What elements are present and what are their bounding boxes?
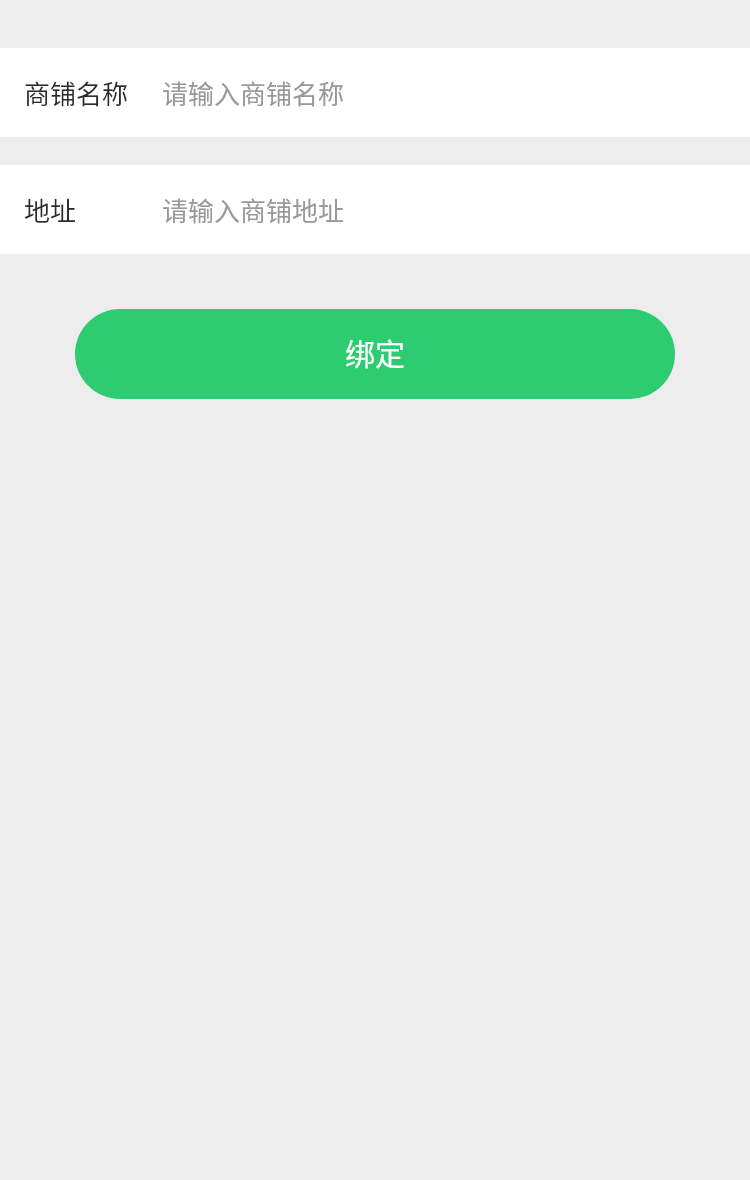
button[interactable]: 绑定	[75, 309, 675, 399]
staticText: 商铺名称	[24, 74, 129, 112]
staticText: 绑定	[345, 330, 405, 373]
staticText: 地址	[24, 191, 77, 229]
button[interactable]: 地址	[0, 165, 750, 254]
button[interactable]: 商铺名称	[0, 48, 750, 137]
staticText: 请输入商铺地址	[162, 191, 345, 229]
staticText: 请输入商铺名称	[162, 74, 345, 112]
